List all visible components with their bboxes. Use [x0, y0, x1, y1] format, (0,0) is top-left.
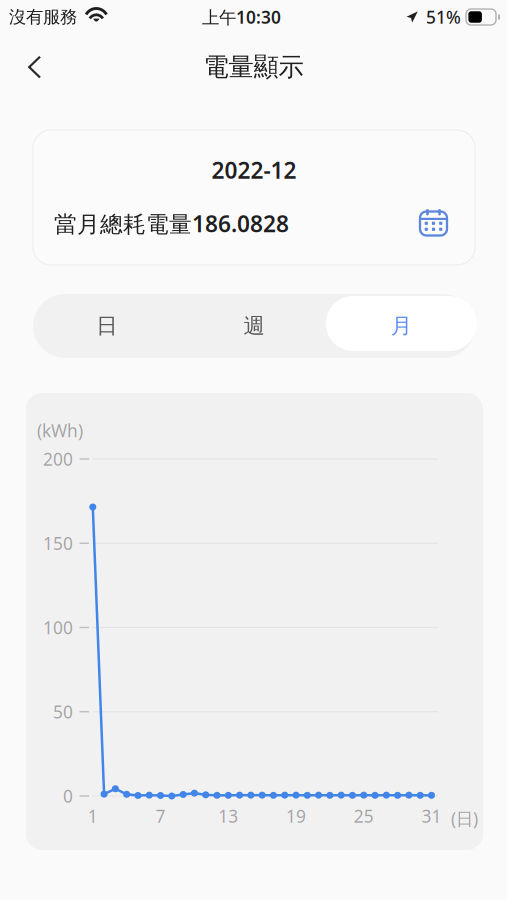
staticText: (kWh) [37, 419, 83, 442]
staticText: 19 [286, 804, 306, 827]
staticText: 日 [96, 313, 117, 339]
staticText: 25 [354, 804, 374, 827]
staticText: (日) [451, 807, 478, 830]
button[interactable]: 月 [328, 294, 475, 358]
staticText: 0 [63, 784, 73, 807]
staticText: 51% [426, 5, 461, 28]
staticText: 2022-12 [211, 155, 296, 185]
staticText: 當月總耗電量186.0828 [54, 208, 289, 238]
staticText: 7 [155, 804, 165, 827]
staticText: 150 [43, 532, 73, 555]
staticText: 31 [421, 804, 441, 827]
staticText: 100 [43, 616, 73, 639]
staticText: 週 [243, 313, 264, 339]
staticText: 月 [391, 313, 412, 339]
button[interactable]: 日 [33, 294, 180, 358]
staticText: 50 [53, 700, 73, 723]
button[interactable]: 週 [180, 294, 328, 358]
staticText: 上午10:30 [202, 5, 281, 28]
staticText: 13 [218, 804, 238, 827]
button[interactable]: Back [0, 43, 61, 90]
staticText: 沒有服務 [9, 6, 77, 28]
staticText: 200 [43, 447, 73, 470]
staticText: 電量顯示 [203, 51, 303, 82]
staticText: 1 [88, 804, 98, 827]
button[interactable]: Choose month [415, 202, 458, 245]
